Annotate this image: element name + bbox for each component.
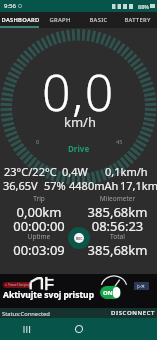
- staticText: km/h: [64, 113, 96, 131]
- staticText: REC: [76, 236, 83, 241]
- staticText: PowerCharging: [8, 283, 30, 287]
- staticText: 45: [116, 138, 123, 145]
- staticText: 385,68km: [78, 241, 157, 259]
- button[interactable]: Home: [53, 318, 105, 340]
- staticText: 17,1km: [120, 178, 157, 193]
- staticText: 36,65V: [3, 178, 38, 193]
- staticText: 57%: [44, 178, 66, 193]
- staticText: 0,1km/h: [105, 164, 148, 179]
- staticText: BASIC: [89, 16, 108, 24]
- staticText: 0,0: [42, 58, 115, 126]
- staticText: 4480mAh: [69, 178, 119, 193]
- staticText: ▷✕: [137, 283, 146, 289]
- staticText: Drive: [68, 143, 90, 154]
- button[interactable]: Record: [68, 227, 90, 249]
- staticText: Status:Connected: [2, 310, 50, 318]
- staticText: DISCONNECT: [111, 309, 156, 317]
- staticText: Aktivujte svoj pristup: [3, 289, 95, 301]
- staticText: 9:56: [4, 2, 16, 10]
- staticText: DASHBOARD: [1, 16, 40, 24]
- staticText: 08:56:23: [78, 217, 157, 235]
- button[interactable]: DASHBOARD: [0, 12, 40, 28]
- button[interactable]: BATTERY: [118, 12, 157, 28]
- staticText: 00:00:00: [0, 217, 78, 235]
- staticText: 23°C/22°C: [4, 164, 57, 179]
- staticText: 385,68km: [78, 203, 157, 221]
- staticText: 00:03:09: [0, 241, 78, 259]
- staticText: 88%: [138, 3, 149, 10]
- button[interactable]: Ad choices: [134, 282, 149, 290]
- staticText: 0,4W: [62, 164, 88, 179]
- button[interactable]: GRAPH: [40, 12, 79, 28]
- staticText: 0,00km: [0, 203, 78, 221]
- button[interactable]: BASIC: [79, 12, 118, 28]
- staticText: ON: [103, 289, 113, 297]
- staticText: BATTERY: [124, 16, 151, 24]
- staticText: GRAPH: [49, 16, 71, 24]
- staticText: 0: [36, 138, 40, 145]
- staticText: Uptime: [0, 232, 78, 241]
- staticText: Trip: [0, 194, 78, 203]
- staticText: Mileometer: [78, 194, 157, 203]
- button[interactable]: DISCONNECT: [110, 308, 157, 318]
- button[interactable]: ON: [100, 286, 121, 299]
- staticText: Total: [78, 232, 157, 241]
- button[interactable]: Recents: [0, 318, 53, 340]
